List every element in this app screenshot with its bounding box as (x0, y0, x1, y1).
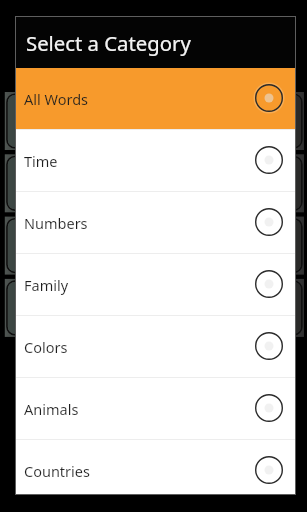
button[interactable]: Time (16, 130, 295, 192)
button[interactable]: Countries (16, 440, 295, 494)
staticText: Family (24, 275, 254, 295)
staticText: Countries (24, 461, 254, 481)
staticText: Time (24, 151, 254, 171)
staticText: Numbers (24, 213, 254, 233)
staticText: Select a Category (26, 29, 191, 57)
staticText: All Words (24, 89, 254, 109)
button[interactable]: All Words (16, 68, 295, 130)
other: Radio button (254, 208, 284, 238)
button[interactable]: Colors (16, 316, 295, 378)
staticText: Animals (24, 399, 254, 419)
other: Radio button (254, 84, 284, 114)
other: Radio button (254, 332, 284, 362)
other: Radio button (254, 270, 284, 300)
other: Radio button (254, 456, 284, 486)
other: Radio button (254, 146, 284, 176)
button[interactable]: Numbers (16, 192, 295, 254)
staticText: Colors (24, 337, 254, 357)
button[interactable]: Animals (16, 378, 295, 440)
other: Radio button (254, 394, 284, 424)
button[interactable]: Family (16, 254, 295, 316)
